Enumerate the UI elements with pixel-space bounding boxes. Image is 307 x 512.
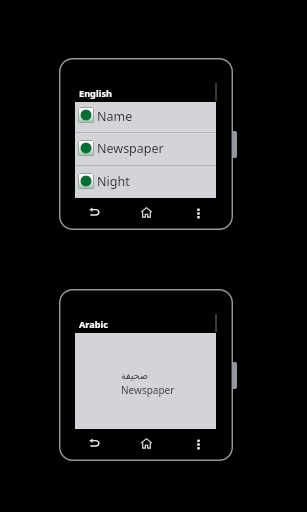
staticText: Arabic (79, 318, 109, 331)
staticText: Name (97, 108, 133, 125)
button[interactable]: Back (74, 432, 114, 452)
button[interactable]: More options (178, 434, 218, 454)
button[interactable]: Home (126, 202, 166, 222)
staticText: English (79, 87, 112, 100)
button[interactable]: Night (75, 166, 216, 198)
staticText: Newspaper (121, 383, 175, 397)
staticText: Night (97, 173, 130, 190)
staticText: Newspaper (97, 140, 164, 157)
button[interactable]: More options (178, 203, 218, 223)
button[interactable]: Home (126, 433, 166, 453)
button[interactable]: Back (74, 201, 114, 221)
staticText: صحيفة (121, 370, 148, 381)
button[interactable]: Newspaper (75, 133, 216, 165)
button[interactable]: Name (75, 102, 216, 132)
